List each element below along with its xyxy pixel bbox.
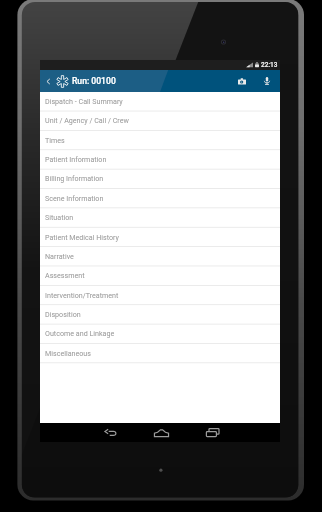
button[interactable]: Unit / Agency / Call / Crew: [40, 111, 280, 130]
button[interactable]: Outcome and Linkage: [40, 324, 280, 343]
staticText: Assessment: [45, 271, 85, 279]
staticText: Narrative: [45, 252, 74, 260]
button[interactable]: Assessment: [40, 266, 280, 285]
staticText: Billing Information: [45, 174, 104, 182]
button[interactable]: Scene Information: [40, 189, 280, 208]
button[interactable]: Home: [140, 423, 182, 442]
button[interactable]: Narrative: [40, 247, 280, 266]
button[interactable]: Intervention/Treatment: [40, 286, 280, 305]
button[interactable]: Patient Information: [40, 150, 280, 169]
button[interactable]: Recent apps: [191, 423, 233, 442]
button[interactable]: Voice input: [257, 70, 277, 92]
staticText: Patient Information: [45, 155, 107, 163]
staticText: Patient Medical History: [45, 233, 119, 241]
staticText: Intervention/Treatment: [45, 291, 119, 299]
button[interactable]: Miscellaneous: [40, 344, 280, 363]
button[interactable]: Patient Medical History: [40, 228, 280, 247]
button[interactable]: Navigate up: [40, 70, 56, 92]
staticText: Run: 00100: [72, 76, 116, 86]
staticText: 22:13: [261, 61, 278, 69]
staticText: Outcome and Linkage: [45, 329, 115, 337]
button[interactable]: Disposition: [40, 305, 280, 324]
staticText: Disposition: [45, 310, 81, 318]
button[interactable]: Times: [40, 131, 280, 150]
button[interactable]: Back: [89, 423, 131, 442]
staticText: Unit / Agency / Call / Crew: [45, 116, 129, 124]
button[interactable]: Billing Information: [40, 169, 280, 188]
button[interactable]: Situation: [40, 208, 280, 227]
staticText: Scene Information: [45, 194, 104, 202]
button[interactable]: Dispatch - Call Summary: [40, 92, 280, 111]
staticText: Situation: [45, 213, 74, 221]
staticText: Miscellaneous: [45, 349, 91, 357]
button[interactable]: Take photo: [232, 70, 252, 92]
staticText: Times: [45, 136, 65, 144]
staticText: Dispatch - Call Summary: [45, 97, 123, 105]
